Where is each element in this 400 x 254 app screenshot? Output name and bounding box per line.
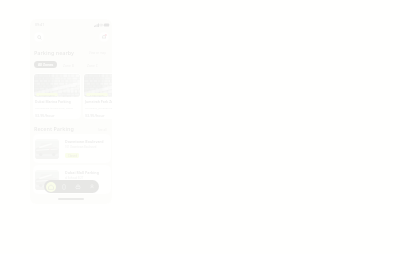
button[interactable]: Dubai Mall Parking [33, 165, 111, 194]
staticText: Closed [68, 154, 77, 158]
staticText: Downtown Boulevard [65, 139, 104, 144]
button[interactable]: Home [44, 180, 57, 193]
staticText: All Zones [38, 62, 54, 67]
staticText: 09:41 [35, 22, 45, 27]
staticText: $3.95/hour [35, 113, 55, 118]
button[interactable]: Notifications [99, 32, 109, 42]
staticText: Jumeirah Park Zabeel [85, 99, 112, 103]
button[interactable]: Search [34, 32, 44, 42]
button[interactable]: 24 free places [33, 73, 81, 119]
staticText: Dubai Marina Parking [35, 99, 71, 103]
button[interactable]: 8 free places [83, 73, 112, 119]
staticText: Parking nearby [34, 49, 75, 56]
button[interactable]: Downtown Boulevard [33, 134, 111, 163]
staticText: Dubai Mall Parking [65, 170, 99, 175]
button[interactable]: All Zones [34, 61, 57, 68]
staticText: Recent Parking [34, 125, 74, 132]
button[interactable]: Profile [85, 180, 99, 193]
staticText: 8 free places [90, 93, 105, 96]
staticText: $3.95/hour [85, 113, 105, 118]
